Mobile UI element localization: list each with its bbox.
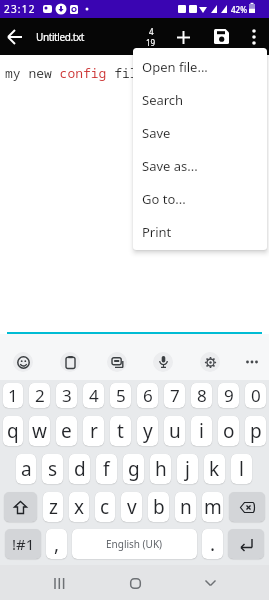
button[interactable]: English (UK): [72, 529, 197, 559]
button[interactable]: o: [218, 416, 239, 446]
staticText: Untitled.txt: [36, 30, 85, 44]
staticText: x: [74, 494, 85, 520]
button[interactable]: z: [43, 492, 63, 522]
button[interactable]: Open file...: [133, 50, 267, 83]
button[interactable]: [13, 352, 33, 372]
button[interactable]: [123, 571, 147, 595]
button[interactable]: t: [110, 416, 131, 446]
button[interactable]: k: [204, 454, 225, 484]
button[interactable]: l: [231, 454, 252, 484]
staticText: 1: [8, 384, 18, 407]
button[interactable]: 5: [110, 383, 131, 408]
staticText: 19: [146, 37, 156, 48]
button[interactable]: [60, 352, 80, 372]
staticText: 0: [251, 384, 261, 407]
staticText: h: [155, 456, 167, 482]
staticText: l: [239, 456, 244, 482]
staticText: t: [117, 418, 124, 444]
staticText: my new config file: [5, 64, 146, 82]
button[interactable]: w: [29, 416, 50, 446]
staticText: 2: [35, 384, 45, 407]
button[interactable]: s: [42, 454, 63, 484]
staticText: b: [153, 494, 165, 520]
button[interactable]: y: [137, 416, 158, 446]
staticText: Search: [142, 91, 184, 109]
button[interactable]: q: [3, 416, 23, 446]
staticText: Save: [142, 124, 171, 142]
button[interactable]: m: [202, 492, 223, 522]
button[interactable]: h: [150, 454, 171, 484]
button[interactable]: d: [69, 454, 90, 484]
button[interactable]: v: [121, 492, 142, 522]
staticText: 6: [143, 384, 153, 407]
button[interactable]: [107, 352, 127, 372]
staticText: ,: [54, 531, 60, 557]
button[interactable]: [153, 352, 173, 372]
staticText: s: [48, 456, 58, 482]
button[interactable]: [228, 529, 264, 559]
button[interactable]: [210, 25, 233, 48]
button[interactable]: e: [56, 416, 77, 446]
staticText: 3: [62, 384, 72, 407]
staticText: j: [185, 456, 190, 482]
button[interactable]: [242, 352, 262, 372]
staticText: o: [223, 418, 235, 444]
button[interactable]: x: [69, 492, 89, 522]
staticText: d: [74, 456, 86, 482]
button[interactable]: Save: [133, 116, 267, 149]
button[interactable]: c: [95, 492, 115, 522]
button[interactable]: 8: [191, 383, 212, 408]
button[interactable]: ,: [46, 529, 67, 559]
button[interactable]: g: [123, 454, 144, 484]
button[interactable]: i: [191, 416, 212, 446]
button[interactable]: 7: [164, 383, 185, 408]
staticText: 8: [197, 384, 207, 407]
staticText: English (UK): [106, 537, 163, 551]
button[interactable]: [4, 26, 26, 48]
staticText: w: [32, 418, 47, 444]
staticText: p: [250, 418, 262, 444]
button[interactable]: Save as...: [133, 149, 267, 182]
button[interactable]: 0: [245, 383, 266, 408]
button[interactable]: f: [96, 454, 117, 484]
staticText: 9: [224, 384, 234, 407]
staticText: n: [180, 494, 192, 520]
button[interactable]: Go to...: [133, 182, 267, 215]
button[interactable]: u: [164, 416, 185, 446]
button[interactable]: n: [175, 492, 196, 522]
staticText: g: [128, 456, 140, 482]
button[interactable]: 9: [218, 383, 239, 408]
button[interactable]: 2: [29, 383, 50, 408]
button[interactable]: a: [16, 454, 36, 484]
button[interactable]: [243, 26, 265, 48]
button[interactable]: 6: [137, 383, 158, 408]
staticText: k: [209, 456, 220, 482]
button[interactable]: 3: [56, 383, 77, 408]
button[interactable]: !#1: [5, 529, 41, 559]
button[interactable]: b: [148, 492, 169, 522]
staticText: Go to...: [142, 190, 186, 208]
staticText: q: [7, 418, 19, 444]
staticText: c: [100, 494, 110, 520]
staticText: 42%: [231, 4, 247, 15]
staticText: a: [21, 456, 32, 482]
button[interactable]: [198, 571, 222, 595]
staticText: Print: [142, 223, 172, 241]
staticText: z: [49, 494, 58, 520]
button[interactable]: 4: [83, 383, 104, 408]
button[interactable]: [172, 26, 194, 48]
button[interactable]: Print: [133, 215, 267, 248]
button[interactable]: p: [245, 416, 266, 446]
button[interactable]: [229, 492, 265, 522]
button[interactable]: Search: [133, 83, 267, 116]
button[interactable]: [200, 352, 220, 372]
staticText: 23:12: [4, 2, 36, 16]
button[interactable]: j: [177, 454, 198, 484]
button[interactable]: [4, 492, 37, 522]
staticText: Save as...: [142, 157, 198, 175]
button[interactable]: r: [83, 416, 104, 446]
button[interactable]: [47, 571, 71, 595]
staticText: Open file...: [142, 58, 208, 76]
button[interactable]: 1: [3, 383, 23, 408]
button[interactable]: .: [202, 529, 223, 559]
